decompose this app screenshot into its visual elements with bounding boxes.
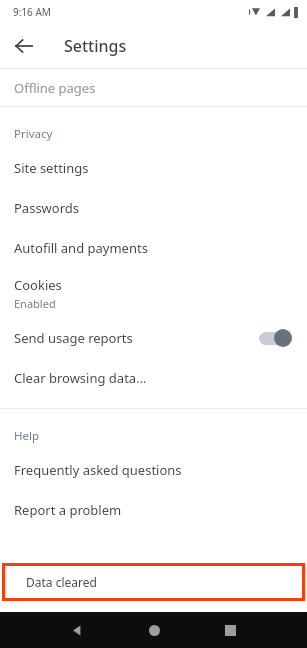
staticText: Offline pages <box>14 79 96 97</box>
staticText: Privacy <box>14 126 53 142</box>
button[interactable]: Recents <box>214 614 246 646</box>
staticText: Send usage reports <box>14 329 133 347</box>
staticText: Frequently asked questions <box>14 461 182 479</box>
staticText: Cookies <box>14 276 62 294</box>
button[interactable]: Frequently asked questions <box>0 450 307 490</box>
staticText: Autofill and payments <box>14 239 148 257</box>
staticText: Enabled <box>14 296 56 311</box>
staticText: Site settings <box>14 159 89 177</box>
button[interactable]: Home <box>138 614 170 646</box>
button[interactable]: Cookies <box>0 268 307 318</box>
staticText: Help <box>14 428 40 444</box>
button[interactable]: Offline pages <box>0 69 307 106</box>
staticText: 9:16 AM <box>13 5 51 19</box>
staticText: Data cleared <box>26 574 97 590</box>
button[interactable]: Site settings <box>0 148 307 188</box>
button[interactable]: Autofill and payments <box>0 228 307 268</box>
staticText: Report a problem <box>14 501 122 519</box>
staticText: Settings <box>64 35 127 57</box>
button[interactable]: Back <box>61 614 93 646</box>
staticText: Clear browsing data… <box>14 369 147 387</box>
button[interactable]: Clear browsing data… <box>0 358 307 398</box>
button[interactable]: Data cleared <box>2 563 305 601</box>
staticText: Passwords <box>14 199 80 217</box>
button[interactable]: Back <box>8 30 40 62</box>
button[interactable]: Send usage reports <box>0 318 307 358</box>
button[interactable]: Report a problem <box>0 490 307 530</box>
button[interactable]: Passwords <box>0 188 307 228</box>
